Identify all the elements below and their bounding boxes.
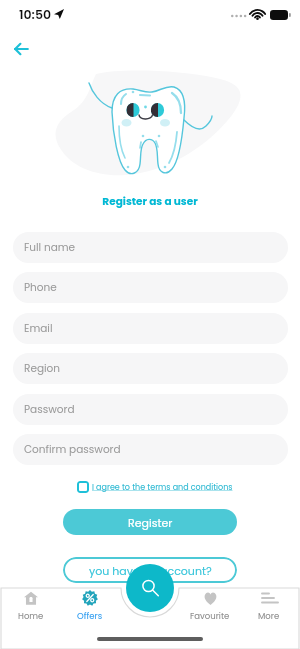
staticText: Home	[18, 610, 44, 622]
staticText: More	[258, 610, 280, 622]
button[interactable]: Register	[63, 509, 237, 535]
staticText: Register	[128, 515, 173, 530]
button[interactable]: Home	[5, 590, 57, 624]
button[interactable]: Region	[13, 353, 288, 384]
button[interactable]: Password	[13, 394, 288, 425]
button[interactable]: Email	[13, 313, 288, 344]
button[interactable]: Phone	[13, 272, 288, 303]
staticText: Confirm password	[24, 442, 121, 457]
button[interactable]: Agree to terms and conditions	[77, 481, 89, 493]
staticText: Offers	[77, 610, 103, 622]
staticText: Email	[24, 321, 53, 336]
staticText: Register as a user	[0, 194, 300, 209]
button[interactable]: Back	[7, 34, 35, 62]
staticText: Region	[24, 361, 61, 376]
button[interactable]: Full name	[13, 232, 288, 263]
button[interactable]: you have an account?	[63, 557, 237, 583]
button[interactable]: Confirm password	[13, 434, 288, 465]
button[interactable]: Offers	[64, 590, 116, 624]
staticText: you have an account?	[89, 563, 212, 578]
button[interactable]: Search	[126, 564, 174, 612]
staticText: Favourite	[190, 610, 230, 622]
button[interactable]: More	[243, 590, 295, 624]
staticText: 10:50	[19, 6, 52, 23]
staticText: Password	[24, 402, 75, 417]
button[interactable]: Favourite	[184, 590, 236, 624]
staticText: Full name	[24, 240, 76, 255]
staticText: Phone	[24, 280, 57, 295]
button[interactable]: I agree to the terms and conditions	[92, 482, 233, 493]
